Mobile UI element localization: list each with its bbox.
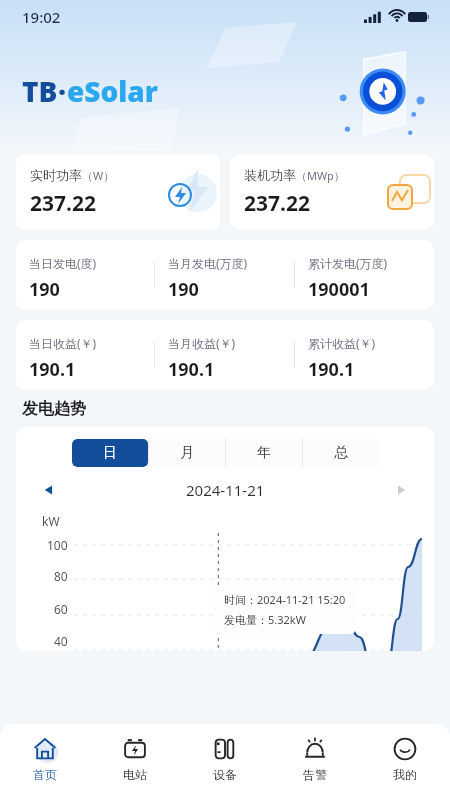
staticText: 当月收益(￥): [168, 335, 236, 351]
staticText: 当日收益(￥): [29, 335, 97, 351]
button[interactable]: 实时功率: [16, 154, 220, 230]
button[interactable]: 设备: [188, 734, 262, 784]
staticText: 电站: [123, 767, 147, 782]
staticText: ·: [58, 72, 67, 110]
staticText: 我的: [393, 767, 417, 782]
staticText: 年: [257, 444, 271, 462]
staticText: 装机功率: [244, 167, 296, 183]
button[interactable]: 告警: [278, 734, 352, 784]
button[interactable]: 当月收益(￥): [155, 320, 294, 390]
staticText: 237.22: [30, 189, 96, 218]
button[interactable]: 累计发电(万度): [295, 240, 434, 310]
staticText: 日: [103, 444, 117, 462]
button[interactable]: 日: [72, 439, 148, 467]
staticText: 190: [29, 277, 60, 302]
button[interactable]: 月: [149, 439, 225, 467]
button[interactable]: Next day: [390, 479, 412, 501]
staticText: （MWp）: [296, 168, 345, 183]
staticText: 237.22: [244, 189, 310, 218]
staticText: 首页: [33, 767, 57, 782]
staticText: 累计收益(￥): [308, 335, 376, 351]
staticText: eSolar: [67, 72, 158, 110]
button[interactable]: Previous day: [38, 479, 60, 501]
staticText: 190.1: [168, 357, 215, 382]
button[interactable]: 当日发电(度): [16, 240, 154, 310]
staticText: 100: [47, 537, 68, 553]
staticText: （W）: [82, 168, 115, 183]
staticText: 190: [168, 277, 199, 302]
staticText: 60: [54, 601, 68, 617]
button[interactable]: 年: [226, 439, 302, 467]
staticText: kW: [42, 513, 60, 529]
staticText: TB: [22, 72, 58, 110]
staticText: 80: [54, 568, 68, 584]
staticText: 40: [54, 633, 68, 649]
staticText: 告警: [303, 767, 327, 782]
staticText: 当月发电(万度): [168, 255, 248, 271]
button[interactable]: 装机功率: [230, 154, 434, 230]
staticText: 190001: [308, 277, 370, 302]
button[interactable]: 我的: [368, 734, 442, 784]
staticText: 月: [180, 444, 194, 462]
button[interactable]: 当日收益(￥): [16, 320, 154, 390]
button[interactable]: 电站: [98, 734, 172, 784]
staticText: 当日发电(度): [29, 255, 97, 271]
staticText: 190.1: [29, 357, 76, 382]
staticText: 实时功率: [30, 167, 82, 183]
staticText: 累计发电(万度): [308, 255, 388, 271]
staticText: 2024-11-21: [186, 480, 265, 500]
staticText: 发电量：5.32kW: [224, 612, 306, 627]
staticText: 设备: [213, 767, 237, 782]
button[interactable]: 累计收益(￥): [295, 320, 434, 390]
button[interactable]: 当月发电(万度): [155, 240, 294, 310]
staticText: 时间：2024-11-21 15:20: [224, 592, 346, 607]
button[interactable]: 首页: [8, 734, 82, 784]
staticText: 发电趋势: [22, 399, 86, 419]
staticText: 190.1: [308, 357, 355, 382]
staticText: 19:02: [22, 7, 61, 27]
button[interactable]: 总: [303, 439, 379, 467]
staticText: 总: [334, 444, 348, 462]
